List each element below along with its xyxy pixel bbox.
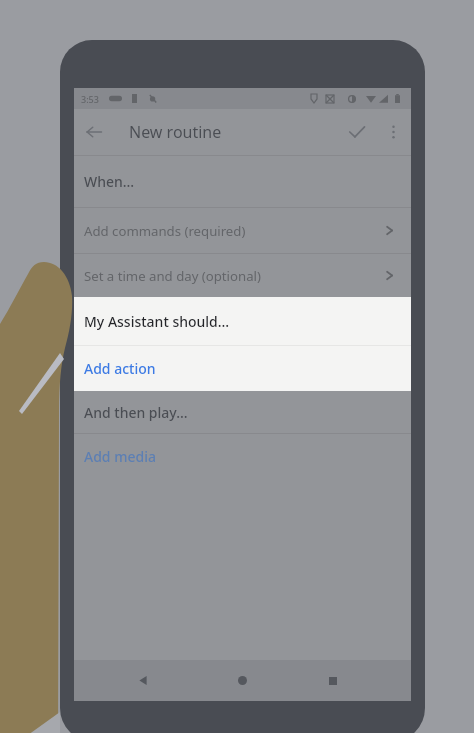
staticText: Add commands (required): [84, 222, 246, 240]
button[interactable]: When…: [74, 156, 411, 207]
button[interactable]: And then play…: [74, 391, 411, 433]
staticText: Add action: [84, 359, 156, 378]
button[interactable]: Save: [339, 114, 375, 150]
staticText: My Assistant should…: [84, 312, 230, 331]
staticText: Add media: [84, 447, 156, 466]
button[interactable]: More options: [377, 116, 409, 148]
staticText: Set a time and day (optional): [84, 267, 261, 285]
button[interactable]: Set a time and day (optional): [74, 254, 411, 297]
button[interactable]: Add action: [74, 346, 411, 391]
button[interactable]: Add media: [74, 434, 411, 478]
button[interactable]: My Assistant should…: [74, 297, 411, 345]
button[interactable]: Navigate up: [77, 115, 111, 149]
button[interactable]: Add commands (required): [74, 208, 411, 253]
staticText: New routine: [129, 121, 222, 143]
button[interactable]: Home: [225, 660, 259, 701]
button[interactable]: Recent apps: [316, 660, 350, 701]
staticText: And then play…: [84, 403, 188, 422]
staticText: 3:53: [81, 93, 99, 105]
button[interactable]: Back: [126, 660, 160, 701]
staticText: When…: [84, 172, 135, 191]
